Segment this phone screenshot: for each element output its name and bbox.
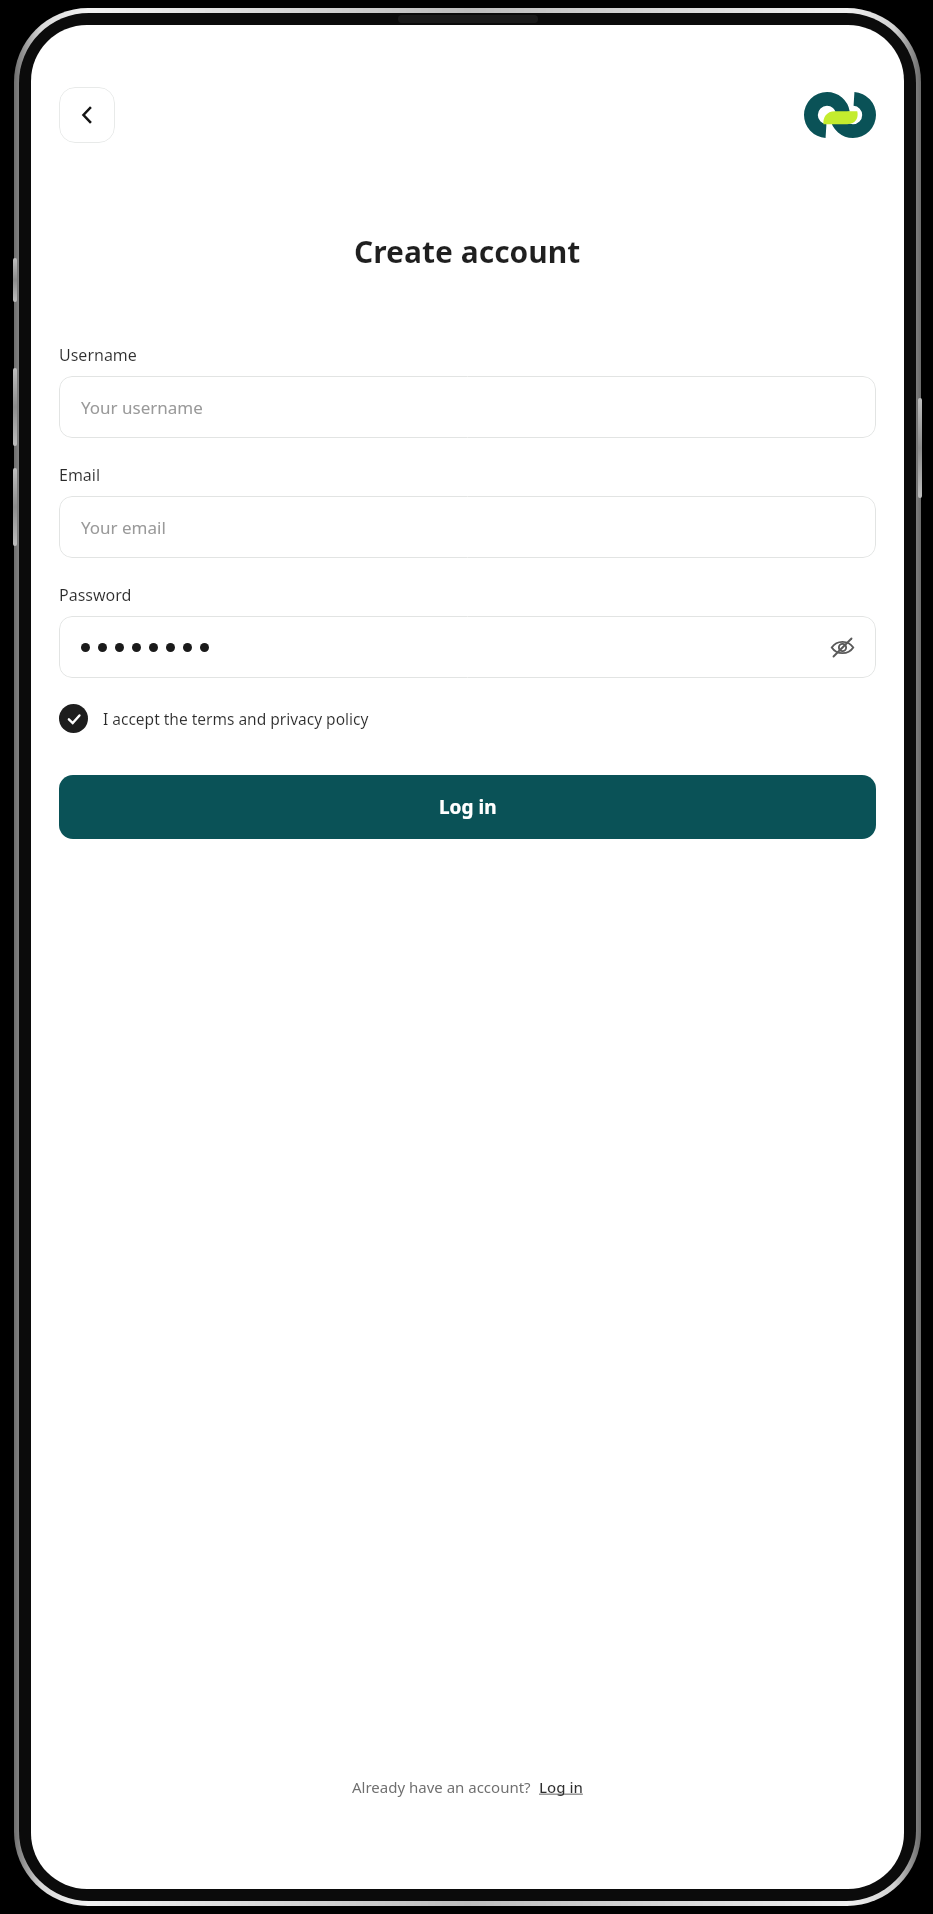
staticText: Your email bbox=[81, 516, 166, 539]
staticText: Your username bbox=[81, 396, 203, 419]
staticText: Log in bbox=[439, 794, 497, 820]
button[interactable]: Back bbox=[59, 87, 115, 143]
button[interactable]: I accept the terms and privacy policy bbox=[59, 704, 876, 733]
staticText: Log in bbox=[539, 1777, 583, 1797]
button[interactable]: Log in bbox=[539, 1777, 583, 1797]
button[interactable]: Log in bbox=[59, 775, 876, 839]
staticText: Already have an account? bbox=[352, 1777, 531, 1797]
staticText: Username bbox=[59, 344, 137, 366]
button[interactable]: Show password bbox=[822, 627, 862, 667]
staticText: I accept the terms and privacy policy bbox=[103, 708, 369, 729]
other: App logo bbox=[804, 92, 876, 138]
staticText: Email bbox=[59, 464, 101, 486]
button[interactable]: Show password bbox=[59, 616, 876, 678]
staticText: Create account bbox=[354, 231, 581, 272]
button[interactable]: Your email bbox=[59, 496, 876, 558]
staticText: Password bbox=[59, 584, 132, 606]
button[interactable]: Your username bbox=[59, 376, 876, 438]
